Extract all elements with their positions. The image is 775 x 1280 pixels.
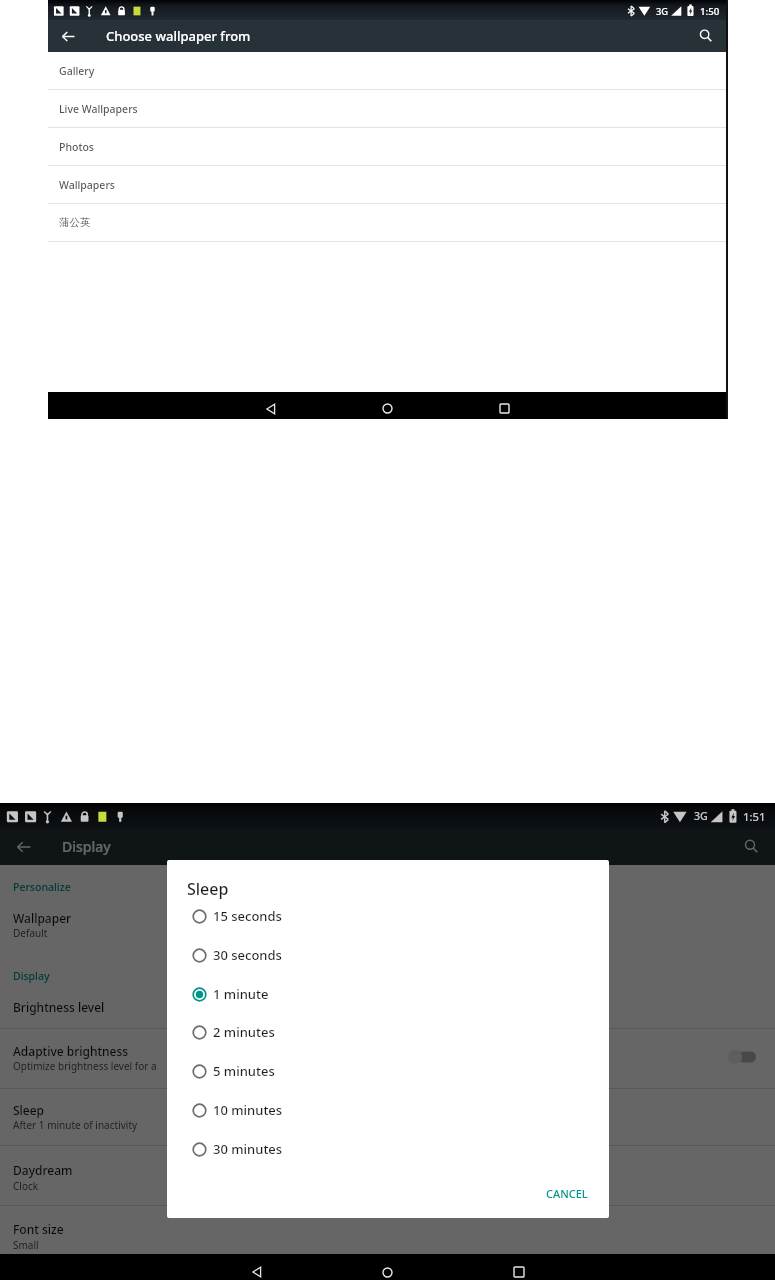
button[interactable]: Back xyxy=(191,1259,322,1280)
button[interactable]: Back xyxy=(212,395,329,422)
button[interactable]: Adaptive brightness toggle xyxy=(727,1043,765,1071)
staticText: Display xyxy=(62,837,111,856)
staticText: Choose wallpaper from xyxy=(106,27,251,45)
button[interactable]: 15 seconds xyxy=(192,897,609,935)
staticText: Sleep xyxy=(13,1102,45,1118)
button[interactable]: Back xyxy=(0,828,48,865)
staticText: Daydream xyxy=(13,1162,73,1178)
staticText: 蒲公英 xyxy=(59,216,91,229)
staticText: 1:50 xyxy=(700,5,720,18)
button[interactable]: Home xyxy=(322,1259,453,1280)
button[interactable]: 2 minutes xyxy=(192,1013,609,1051)
button[interactable]: Live Wallpapers xyxy=(48,90,727,128)
staticText: Optimize brightness level for a xyxy=(13,1059,157,1073)
staticText: Small xyxy=(13,1238,39,1252)
staticText: Photos xyxy=(59,140,94,154)
button[interactable]: 1 minute xyxy=(192,975,609,1013)
button[interactable]: Photos xyxy=(48,128,727,166)
staticText: Personalize xyxy=(13,880,71,894)
button[interactable]: 10 minutes xyxy=(192,1091,609,1129)
staticText: CANCEL xyxy=(546,1186,588,1201)
staticText: Sleep xyxy=(187,878,229,900)
button[interactable]: Recents xyxy=(446,395,563,422)
staticText: Live Wallpapers xyxy=(59,102,138,116)
staticText: Default xyxy=(13,926,48,940)
staticText: Gallery xyxy=(59,64,95,78)
button[interactable]: 蒲公英 xyxy=(48,204,727,242)
staticText: Display xyxy=(13,969,50,983)
button[interactable]: 30 minutes xyxy=(192,1130,609,1168)
staticText: 1 minute xyxy=(213,985,269,1003)
button[interactable]: Back xyxy=(48,20,89,52)
staticText: 30 seconds xyxy=(213,946,282,964)
staticText: Wallpapers xyxy=(59,178,115,192)
button[interactable]: Search xyxy=(727,828,775,865)
staticText: Wallpaper xyxy=(13,910,72,926)
staticText: Brightness level xyxy=(13,999,105,1015)
button[interactable]: Search xyxy=(685,20,727,52)
staticText: 2 minutes xyxy=(213,1023,275,1041)
button[interactable]: Recents xyxy=(453,1259,584,1280)
staticText: 10 minutes xyxy=(213,1101,283,1119)
button[interactable]: CANCEL xyxy=(538,1181,596,1206)
staticText: Clock xyxy=(13,1179,39,1193)
button[interactable]: Wallpapers xyxy=(48,166,727,204)
staticText: After 1 minute of inactivity xyxy=(13,1118,138,1132)
staticText: 1:51 xyxy=(743,809,766,824)
button[interactable]: Home xyxy=(329,395,446,422)
staticText: 30 minutes xyxy=(213,1140,283,1158)
staticText: 5 minutes xyxy=(213,1062,275,1080)
staticText: 3G xyxy=(656,5,669,18)
staticText: 3G xyxy=(694,809,708,824)
staticText: Font size xyxy=(13,1221,64,1237)
staticText: 15 seconds xyxy=(213,907,282,925)
button[interactable]: Gallery xyxy=(48,52,727,90)
button[interactable]: 5 minutes xyxy=(192,1052,609,1090)
button[interactable]: 30 seconds xyxy=(192,936,609,974)
staticText: Adaptive brightness xyxy=(13,1043,129,1059)
